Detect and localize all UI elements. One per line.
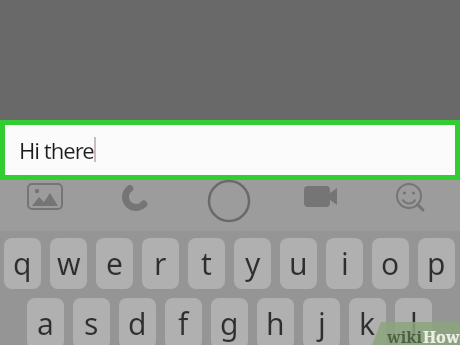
button[interactable]: u <box>280 238 317 289</box>
staticText: e <box>106 243 123 284</box>
button[interactable]: o <box>372 238 409 289</box>
button[interactable] <box>304 184 340 209</box>
staticText: p <box>427 243 446 284</box>
staticText: q <box>13 243 32 284</box>
staticText: wiki <box>387 326 423 345</box>
button[interactable]: d <box>119 298 156 345</box>
staticText: g <box>220 303 239 344</box>
staticText: s <box>84 303 99 344</box>
button[interactable]: a <box>27 298 64 345</box>
button[interactable]: i <box>326 238 363 289</box>
staticText: h <box>266 303 285 344</box>
staticText: d <box>128 303 147 344</box>
button[interactable]: f <box>165 298 202 345</box>
button[interactable]: p <box>418 238 455 289</box>
staticText: l <box>410 303 418 344</box>
button[interactable] <box>120 182 152 214</box>
button[interactable]: r <box>142 238 179 289</box>
button[interactable]: Hi there <box>5 125 455 175</box>
button[interactable] <box>208 180 250 222</box>
button[interactable]: w <box>50 238 87 289</box>
staticText: y <box>245 243 261 284</box>
staticText: Hi there <box>19 135 94 165</box>
button[interactable]: l <box>395 298 432 345</box>
staticText: a <box>37 303 54 344</box>
staticText: r <box>154 243 167 284</box>
button[interactable]: y <box>234 238 271 289</box>
staticText: How <box>423 326 460 345</box>
staticText: t <box>201 243 212 284</box>
button[interactable]: h <box>257 298 294 345</box>
button[interactable]: j <box>303 298 340 345</box>
button[interactable]: e <box>96 238 133 289</box>
button[interactable]: q <box>4 238 41 289</box>
staticText: k <box>359 303 376 344</box>
staticText: u <box>289 243 308 284</box>
button[interactable]: s <box>73 298 110 345</box>
button[interactable]: t <box>188 238 225 289</box>
staticText: f <box>178 303 189 344</box>
staticText: o <box>381 243 400 284</box>
button[interactable]: k <box>349 298 386 345</box>
staticText: i <box>341 243 349 284</box>
staticText: j <box>318 303 326 344</box>
staticText: w <box>57 243 81 284</box>
button[interactable]: g <box>211 298 248 345</box>
button[interactable] <box>27 183 63 210</box>
button[interactable] <box>394 182 428 214</box>
